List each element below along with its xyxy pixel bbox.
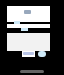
button[interactable]: Action bbox=[38, 51, 46, 57]
button[interactable] bbox=[22, 51, 35, 57]
